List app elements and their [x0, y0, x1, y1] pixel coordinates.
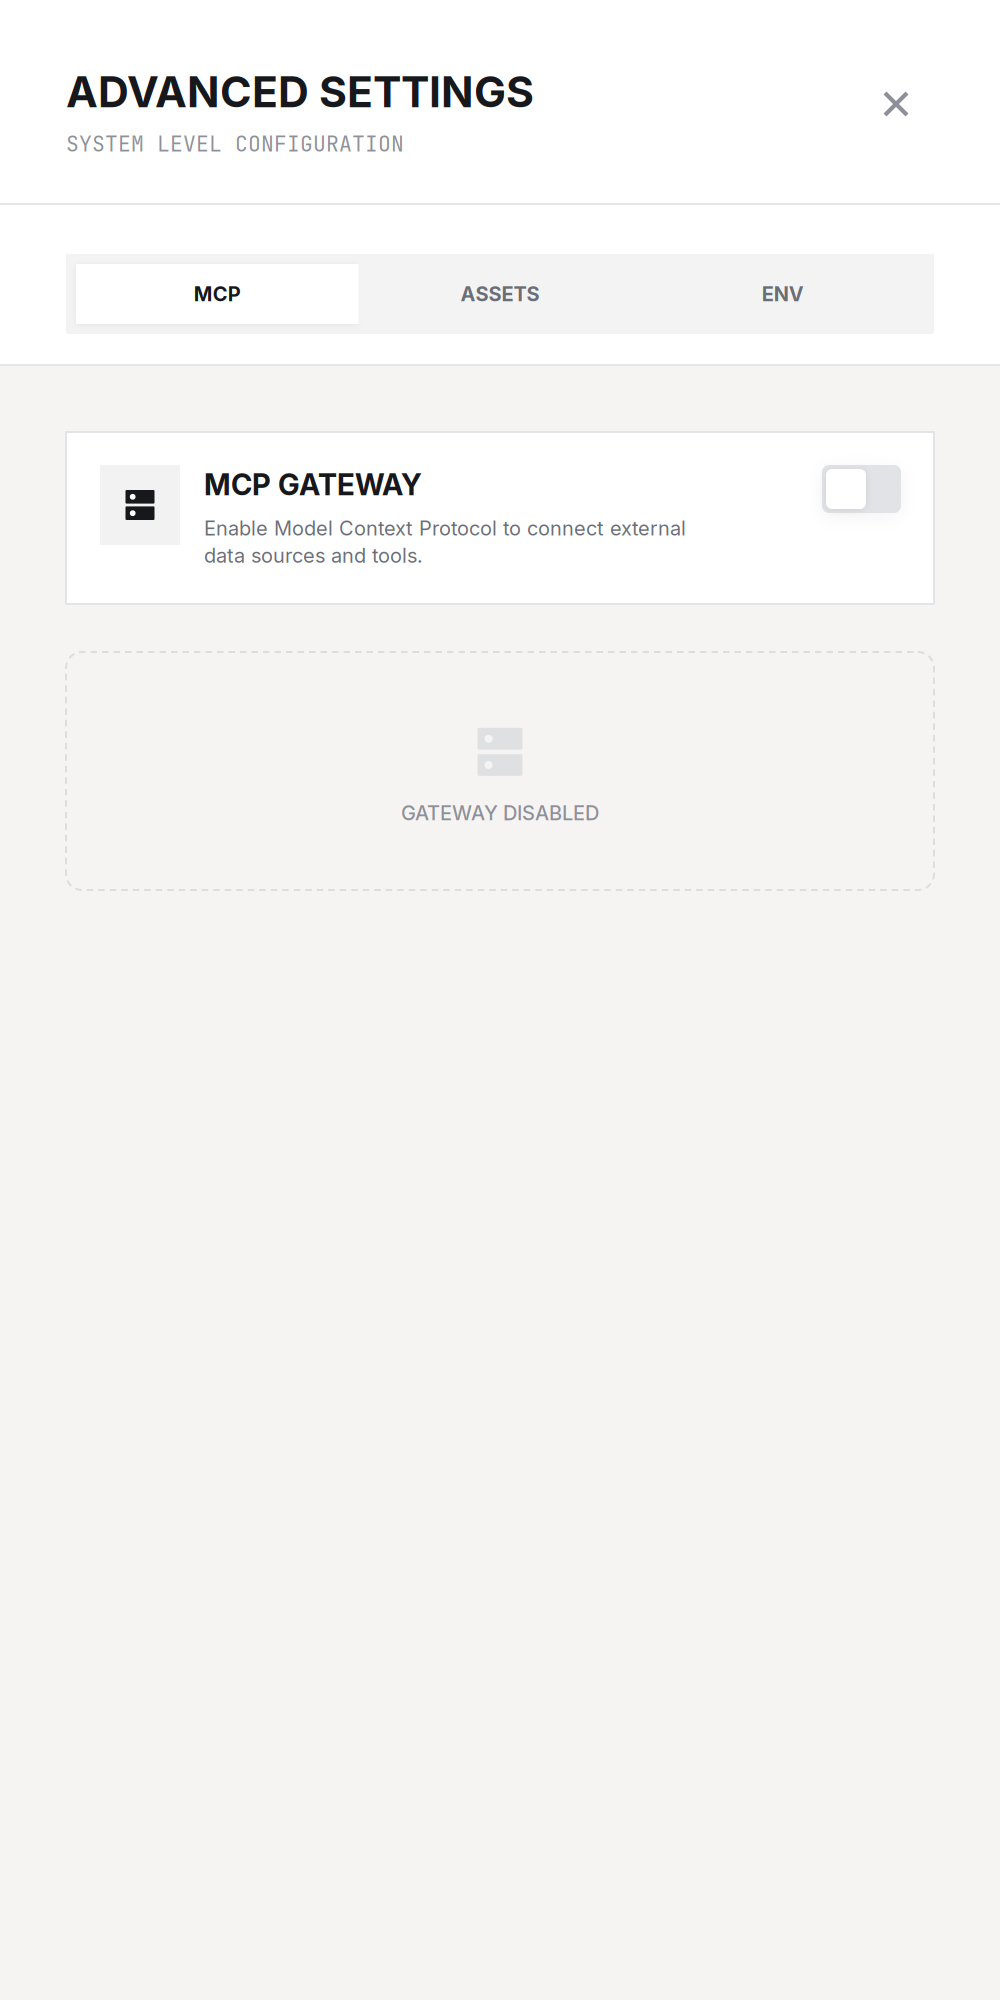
staticText: MCP GATEWAY: [204, 467, 422, 502]
button[interactable]: Close: [864, 72, 928, 136]
staticText: ADVANCED SETTINGS: [66, 66, 534, 118]
staticText: MCP: [194, 282, 241, 306]
button[interactable]: ASSETS: [359, 264, 641, 324]
button[interactable]: Enable MCP Gateway: [822, 465, 901, 513]
staticText: SYSTEM LEVEL CONFIGURATION: [66, 130, 404, 158]
button[interactable]: MCP: [76, 264, 359, 324]
staticText: ENV: [762, 282, 804, 306]
staticText: ASSETS: [460, 282, 539, 306]
button[interactable]: ENV: [641, 264, 924, 324]
staticText: Enable Model Context Protocol to connect…: [204, 516, 686, 540]
staticText: data sources and tools.: [204, 543, 423, 568]
staticText: GATEWAY DISABLED: [401, 801, 599, 825]
